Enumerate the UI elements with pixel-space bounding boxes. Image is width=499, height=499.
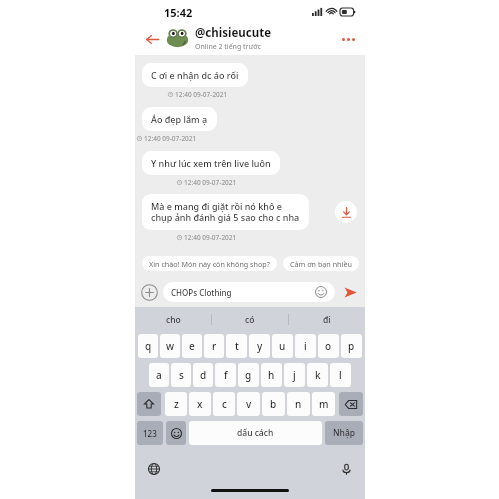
button[interactable]: f [215,363,236,387]
staticText: u [279,339,286,353]
staticText: C ơi e nhận dc áo rối [151,69,239,81]
staticText: w [166,339,175,353]
button[interactable]: a [149,363,169,387]
button[interactable]: m [312,392,335,416]
button[interactable]: Download [335,201,357,223]
button[interactable]: j [284,363,305,387]
button[interactable]: l [330,363,351,387]
button[interactable]: r [204,334,224,358]
button[interactable]: C ơi e nhận dc áo rối [142,63,248,87]
button[interactable]: Mà e mang đi giặt rồi nó khô e chụp ảnh … [142,194,309,230]
staticText: @chisieucute [195,25,271,41]
staticText: Online 2 tiếng trước [195,42,261,52]
staticText: h [268,368,275,382]
staticText: Cảm ơn bạn nhiều [290,259,352,269]
staticText: CHOPs Clothing [171,287,315,298]
button[interactable]: s [171,363,191,387]
staticText: 12:40 09-07-2021 [184,178,237,187]
staticText: g [245,368,252,382]
button[interactable]: w [160,334,180,358]
button[interactable]: CHOPs Clothing [163,282,335,302]
staticText: Áo đẹp lắm ạ [151,113,208,125]
button[interactable]: c [213,392,235,416]
staticText: cho [166,314,181,326]
staticText: Xin chào! Món này còn không shop? [149,259,270,269]
button[interactable]: i [295,334,316,358]
button[interactable]: h [261,363,282,387]
staticText: 123 [143,428,157,439]
button[interactable]: Emoji keyboard [166,421,186,445]
staticText: i [304,339,307,353]
staticText: a [156,368,162,382]
staticText: v [246,397,252,411]
button[interactable]: Backspace [339,392,363,416]
staticText: f [224,368,228,382]
button[interactable]: đi [289,307,365,332]
button[interactable]: x [189,392,211,416]
staticText: s [179,368,184,382]
button[interactable]: cho [135,307,211,332]
button[interactable]: More options [338,29,358,49]
button[interactable]: Back [142,29,162,49]
staticText: b [270,397,277,411]
button[interactable]: n [287,392,310,416]
staticText: x [197,397,203,411]
button[interactable]: y [249,334,270,358]
staticText: c [222,397,227,411]
button[interactable]: q [138,334,158,358]
staticText: z [174,397,179,411]
staticText: có [245,314,255,326]
button[interactable]: 123 [137,421,163,445]
staticText: m [319,397,329,411]
button[interactable]: Áo đẹp lắm ạ [142,107,217,131]
button[interactable]: có [212,307,288,332]
button[interactable]: v [237,392,260,416]
staticText: y [257,339,263,353]
staticText: p [348,339,355,353]
button[interactable]: t [226,334,247,358]
button[interactable]: u [272,334,293,358]
staticText: dấu cách [237,427,274,439]
staticText: Nhập [333,427,356,439]
button[interactable]: Change language [146,461,162,477]
staticText: n [295,397,302,411]
staticText: 12:40 09-07-2021 [144,134,197,143]
button[interactable]: p [341,334,362,358]
button[interactable]: z [165,392,187,416]
staticText: e [189,339,195,353]
button[interactable]: Nhập [325,421,363,445]
staticText: d [200,368,207,382]
staticText: 15:42 [164,5,193,20]
button[interactable]: Add attachment [141,284,158,301]
button[interactable]: o [318,334,339,358]
button[interactable]: Voice input [338,461,354,477]
button[interactable]: Emoji [315,286,327,298]
button[interactable]: b [262,392,285,416]
staticText: o [325,339,332,353]
staticText: 12:40 09-07-2021 [184,233,237,242]
button[interactable]: Shift [137,392,161,416]
button[interactable]: Xin chào! Món này còn không shop? [142,256,277,271]
staticText: q [145,339,152,353]
button[interactable]: k [307,363,328,387]
button[interactable]: dấu cách [189,421,322,445]
staticText: k [315,368,321,382]
staticText: j [293,368,296,382]
button[interactable]: e [182,334,202,358]
staticText: 12:40 09-07-2021 [175,90,228,99]
staticText: đi [323,314,331,326]
button[interactable]: g [238,363,259,387]
button[interactable]: d [193,363,213,387]
staticText: Y như lúc xem trên live luôn [151,157,271,169]
button[interactable]: Cảm ơn bạn nhiều [283,256,359,271]
staticText: l [339,368,342,382]
staticText: r [212,339,217,353]
button[interactable]: Y như lúc xem trên live luôn [142,151,280,175]
staticText: Mà e mang đi giặt rồi nó khô e chụp ảnh … [151,200,300,224]
button[interactable]: Send [341,283,359,301]
staticText: t [235,339,239,353]
